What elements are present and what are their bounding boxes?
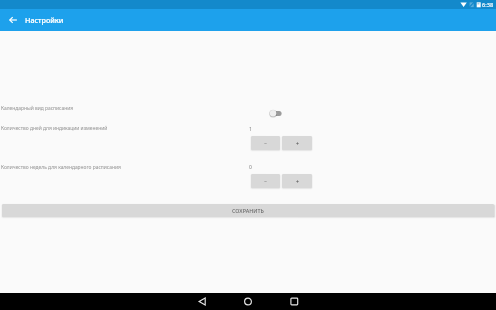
staticText: 1 <box>249 126 252 133</box>
button[interactable]: Increase <box>282 136 312 150</box>
staticText: Количество недель для календарного распи… <box>1 164 121 171</box>
button[interactable]: СОХРАНИТЬ <box>2 204 494 217</box>
staticText: 6:38 <box>482 1 494 9</box>
button[interactable]: Increase <box>282 174 312 188</box>
button[interactable]: Decrease <box>251 136 280 150</box>
button[interactable]: Back <box>5 12 21 28</box>
staticText: 0 <box>249 164 252 171</box>
staticText: Настройки <box>25 15 64 25</box>
staticText: Календарный вид расписания <box>1 105 74 112</box>
staticText: Количество дней для индикации изменений <box>1 125 108 132</box>
staticText: СОХРАНИТЬ <box>232 207 264 214</box>
button[interactable]: Decrease <box>251 174 280 188</box>
button[interactable]: Calendar view toggle <box>264 105 288 122</box>
